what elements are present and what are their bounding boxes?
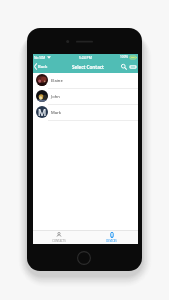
staticText: John	[51, 94, 60, 100]
staticText: Elaine	[51, 78, 63, 84]
button[interactable]: Search	[119, 60, 128, 73]
staticText: DEVICES	[106, 239, 117, 243]
staticText: CONTACTS	[52, 239, 66, 243]
staticText: 100%	[120, 55, 129, 59]
staticText: M	[38, 106, 47, 118]
staticText: Select Contact	[72, 64, 104, 70]
staticText: 5:24 PM	[79, 55, 92, 60]
button[interactable]: M	[33, 105, 138, 121]
button[interactable]: Back	[33, 63, 65, 70]
button[interactable]: CONTACTS	[33, 231, 85, 244]
button[interactable]: John	[33, 89, 138, 105]
button[interactable]: Elaine	[33, 73, 138, 89]
button[interactable]: Messages	[128, 60, 137, 73]
staticText: Back	[38, 64, 48, 70]
staticText: Mark	[51, 110, 62, 116]
staticText: No SIM	[34, 55, 46, 59]
button[interactable]: DEVICES	[85, 231, 138, 244]
